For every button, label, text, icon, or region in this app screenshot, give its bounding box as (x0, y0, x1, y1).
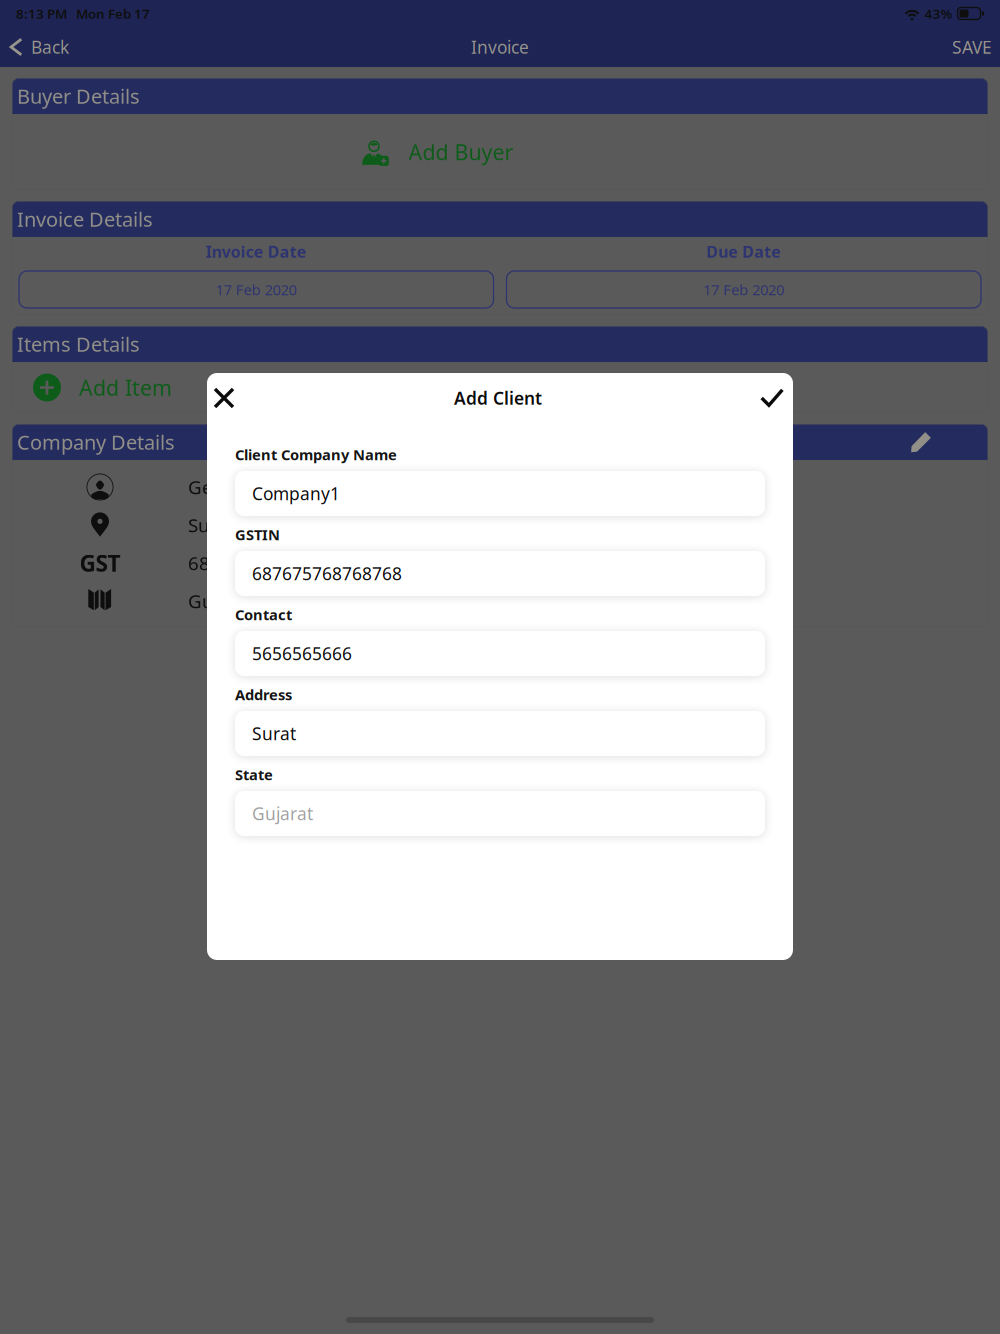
staticText: Company1 (252, 482, 340, 505)
staticText: Invoice Details (17, 206, 153, 232)
button[interactable]: Company1 (235, 471, 765, 516)
staticText: Add Buyer (408, 138, 513, 166)
staticText: 43% (924, 5, 952, 22)
staticText: 687675768768768 (252, 562, 402, 585)
staticText: Gujarat (252, 802, 313, 825)
staticText: Company Details (17, 429, 175, 455)
staticText: Geeks (188, 475, 243, 499)
button[interactable]: 687675768768768 (235, 551, 765, 596)
staticText: Due Date (706, 241, 781, 262)
button[interactable]: Close (201, 375, 247, 421)
staticText: 68767576 (188, 551, 276, 575)
button[interactable]: SAVE (942, 27, 1000, 67)
staticText: Add Client (454, 386, 542, 409)
staticText: Buyer Details (17, 83, 140, 109)
staticText: Client Company Name (235, 445, 397, 464)
staticText: 17 Feb 2020 (703, 280, 784, 299)
staticText: Contact (235, 605, 292, 624)
staticText: SAVE (952, 35, 992, 58)
button[interactable]: Add Buyer (12, 114, 988, 190)
button[interactable]: 17 Feb 2020 (19, 271, 493, 308)
button[interactable]: 5656565666 (235, 631, 765, 676)
button[interactable]: Save client (749, 375, 795, 421)
button[interactable]: Back (0, 27, 79, 67)
staticText: State (235, 765, 273, 784)
staticText: 5656565666 (252, 642, 352, 665)
button[interactable]: 17 Feb 2020 (506, 271, 981, 308)
staticText: Surat (252, 722, 296, 745)
staticText: GST (79, 548, 120, 578)
staticText: Items Details (17, 331, 140, 357)
staticText: Surat (188, 513, 234, 537)
button[interactable]: Surat (235, 711, 765, 756)
button[interactable]: Gujarat (235, 791, 765, 836)
staticText: GSTIN (235, 525, 280, 544)
staticText: Add Item (79, 373, 172, 402)
button[interactable]: Add Item (12, 362, 988, 413)
staticText: Invoice Date (206, 241, 307, 262)
staticText: Back (31, 35, 69, 58)
staticText: Address (235, 685, 292, 704)
staticText: 8:13 PM Mon Feb 17 (16, 5, 150, 22)
staticText: Invoice (471, 35, 529, 58)
staticText: 17 Feb 2020 (216, 280, 297, 299)
button[interactable]: Edit company details (899, 424, 943, 460)
staticText: Gujarat (188, 589, 253, 613)
